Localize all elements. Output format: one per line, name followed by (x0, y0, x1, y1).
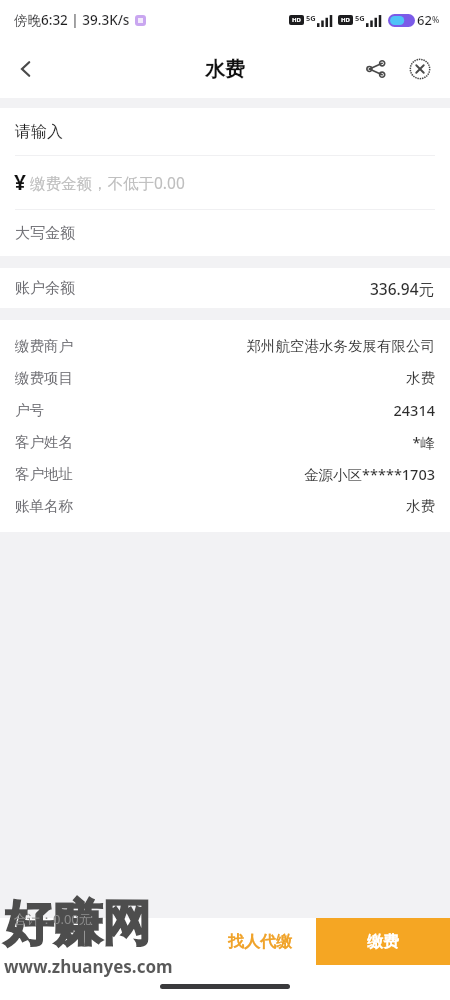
staticText: 账单名称 (15, 497, 73, 515)
staticText: 好赚网 (4, 893, 151, 955)
staticText: www.zhuanyes.com (4, 955, 173, 978)
staticText: 金源小区*****1703 (304, 464, 435, 484)
staticText: 请输入 (15, 122, 63, 142)
button[interactable]: 找人代缴 (203, 918, 316, 965)
staticText: *峰 (412, 432, 435, 452)
staticText: 户号 (15, 401, 44, 419)
staticText: 账户余额 (15, 279, 75, 298)
button[interactable]: Share (354, 47, 398, 91)
staticText: 水费 (406, 369, 435, 387)
staticText: 缴费金额，不低于0.00 (30, 172, 185, 193)
staticText: 郑州航空港水务发展有限公司 (246, 337, 435, 355)
staticText: HD (341, 16, 350, 24)
staticText: 336.94元 (370, 278, 435, 299)
button[interactable]: 缴费 (316, 918, 450, 965)
staticText: % (432, 14, 440, 26)
staticText: 24314 (393, 400, 435, 420)
staticText: HD (292, 16, 301, 24)
staticText: 缴费 (367, 932, 399, 952)
staticText: 5G (306, 13, 316, 23)
staticText: 客户姓名 (15, 433, 73, 451)
staticText: 5G (355, 13, 365, 23)
staticText: 找人代缴 (228, 932, 292, 952)
staticText: ¥ (14, 168, 27, 197)
staticText: 62 (417, 11, 432, 29)
button[interactable]: Back (0, 43, 52, 95)
staticText: 傍晚6:32 | 39.3K/s (14, 11, 130, 29)
staticText: 大写金额 (15, 224, 75, 243)
staticText: 水费 (205, 57, 245, 82)
staticText: 客户地址 (15, 465, 73, 483)
button[interactable]: Close (398, 47, 442, 91)
staticText: 缴费商户 (15, 337, 73, 355)
staticText: 水费 (406, 497, 435, 515)
staticText: 缴费项目 (15, 369, 73, 387)
staticText: 合计：0.00元 (14, 910, 92, 928)
